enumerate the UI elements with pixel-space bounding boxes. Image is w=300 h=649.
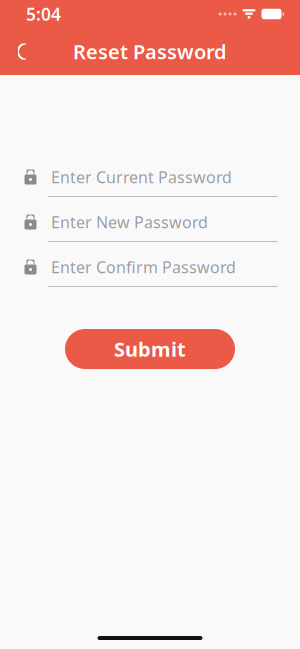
staticText: 5:04 <box>26 2 61 25</box>
staticText: Submit <box>114 336 186 362</box>
staticText: Enter New Password <box>51 211 208 233</box>
staticText: Reset Password <box>73 38 227 65</box>
button[interactable]: Enter New Password <box>0 211 300 256</box>
button[interactable]: Submit <box>65 329 235 369</box>
button[interactable]: Enter Current Password <box>0 166 300 211</box>
button[interactable]: Back <box>0 29 44 73</box>
button[interactable]: Enter Confirm Password <box>0 256 300 301</box>
staticText: Enter Confirm Password <box>51 256 236 278</box>
staticText: Enter Current Password <box>51 166 232 188</box>
